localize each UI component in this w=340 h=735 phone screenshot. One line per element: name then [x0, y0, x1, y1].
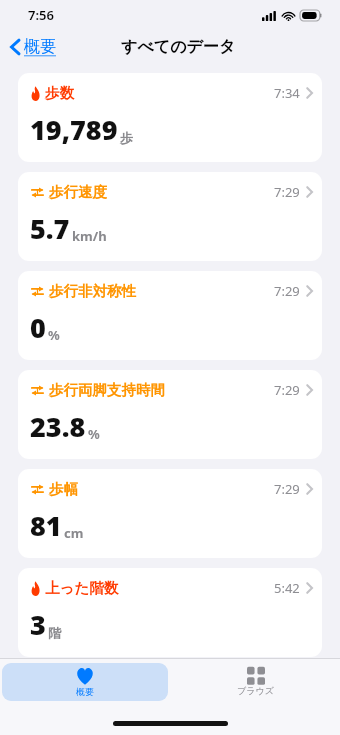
button[interactable]: 歩幅 [18, 469, 322, 558]
staticText: 7:29 [274, 381, 300, 399]
staticText: 概要 [76, 686, 94, 697]
staticText: 歩行非対称性 [49, 282, 136, 300]
staticText: すべてのデータ [121, 37, 236, 57]
staticText: 7:29 [274, 282, 300, 300]
staticText: 上った階数 [45, 579, 119, 597]
staticText: % [48, 326, 60, 344]
staticText: 5.7 [30, 210, 70, 247]
button[interactable]: 歩数 [18, 73, 322, 162]
button[interactable]: 概要 [2, 663, 168, 701]
staticText: km/h [72, 227, 107, 245]
button[interactable]: ブラウズ [170, 659, 340, 703]
staticText: ブラウズ [237, 685, 274, 696]
staticText: 歩行両脚支持時間 [49, 381, 165, 399]
button[interactable]: 歩行両脚支持時間 [18, 370, 322, 459]
button[interactable]: 上った階数 [18, 568, 322, 657]
staticText: 5:42 [274, 579, 300, 597]
button[interactable]: 歩行非対称性 [18, 271, 322, 360]
staticText: 0 [30, 309, 46, 346]
staticText: 23.8 [30, 408, 86, 445]
button[interactable]: 歩行速度 [18, 172, 322, 261]
staticText: 3 [30, 606, 46, 643]
staticText: 概要 [24, 37, 56, 57]
staticText: cm [64, 524, 84, 542]
staticText: 7:56 [28, 6, 54, 24]
staticText: 歩数 [45, 84, 74, 102]
staticText: 歩行速度 [49, 183, 107, 201]
staticText: 歩 [120, 130, 133, 146]
staticText: 階 [48, 625, 61, 641]
staticText: % [88, 425, 100, 443]
staticText: 7:34 [274, 84, 300, 102]
staticText: 19,789 [30, 111, 118, 148]
staticText: 7:29 [274, 183, 300, 201]
staticText: 7:29 [274, 480, 300, 498]
staticText: 歩幅 [49, 480, 78, 498]
staticText: 81 [30, 507, 62, 544]
button[interactable]: 概要 [0, 33, 64, 61]
